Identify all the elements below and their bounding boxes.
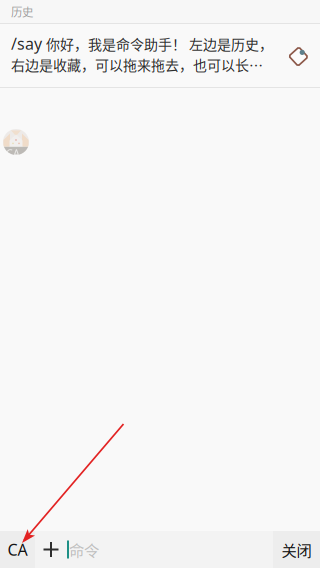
button[interactable]: CA [0, 531, 35, 568]
button[interactable]: 关闭 [273, 531, 320, 568]
staticText: 关闭 [281, 538, 311, 561]
staticText: /say 你好，我是命令助手！ 左边是历史， [11, 33, 273, 54]
button[interactable]: /say 你好，我是命令助手！ 左边是历史， [0, 24, 320, 87]
staticText: CA [6, 146, 20, 160]
staticText: 右边是收藏，可以拖来拖去，也可以长… [11, 54, 263, 74]
button[interactable]: New command [35, 531, 67, 568]
staticText: 历史 [11, 3, 33, 20]
staticText: 命令 [69, 538, 99, 561]
staticText: CA [7, 539, 27, 560]
